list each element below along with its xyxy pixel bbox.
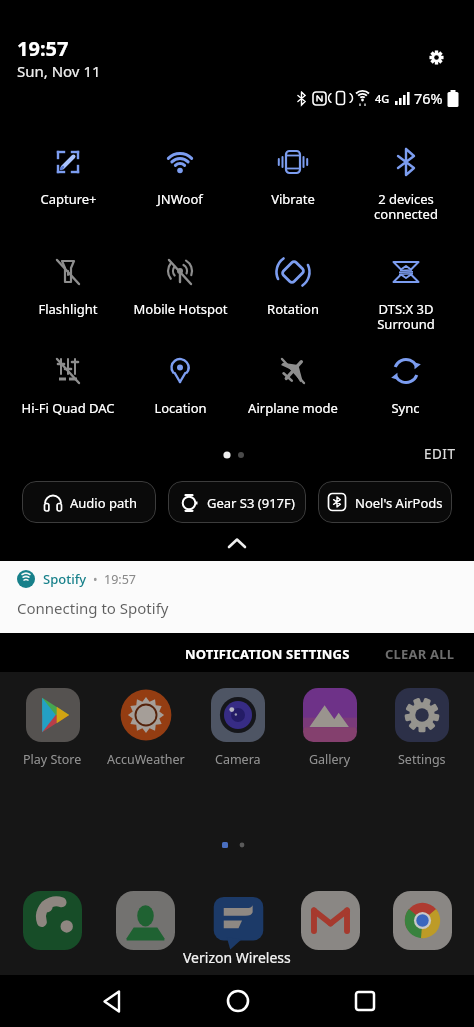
staticText: Audio path: [70, 494, 137, 512]
staticText: 19:57: [17, 35, 69, 62]
button[interactable]: CLEAR ALL: [375, 637, 465, 671]
staticText: Noel's AirPods: [355, 494, 443, 512]
button[interactable]: Airplane mode: [236, 352, 349, 417]
staticText: 76%: [414, 88, 443, 108]
staticText: Vibrate: [271, 190, 315, 208]
button[interactable]: [99, 891, 192, 950]
button[interactable]: [192, 891, 284, 950]
button[interactable]: [212, 975, 264, 1027]
staticText: AccuWeather: [107, 751, 185, 768]
button[interactable]: EDIT: [410, 440, 470, 468]
staticText: 19:57: [104, 571, 136, 588]
staticText: Mobile Hotspot: [133, 300, 228, 318]
staticText: •: [93, 571, 98, 587]
staticText: Verizon Wireless: [183, 948, 291, 967]
button[interactable]: Mobile Hotspot: [124, 253, 236, 318]
button[interactable]: JNWoof: [124, 143, 236, 208]
button[interactable]: Noel's AirPods: [318, 481, 452, 523]
staticText: Play Store: [23, 751, 82, 768]
button[interactable]: Hi-Fi Quad DAC: [12, 352, 124, 417]
button[interactable]: DTS:X 3D Surround: [349, 253, 462, 333]
staticText: Flashlight: [38, 300, 98, 318]
button[interactable]: [376, 891, 468, 950]
staticText: 2 devices connected: [374, 190, 438, 223]
button[interactable]: [339, 975, 391, 1027]
staticText: Spotify: [43, 570, 87, 588]
button[interactable]: NOTIFICATION SETTINGS: [165, 637, 370, 671]
button[interactable]: [284, 891, 376, 950]
staticText: Rotation: [267, 300, 319, 318]
button[interactable]: Spotify: [0, 561, 474, 633]
staticText: CLEAR ALL: [385, 645, 455, 663]
staticText: Sync: [391, 399, 420, 417]
staticText: Capture+: [40, 190, 97, 208]
button[interactable]: [6, 891, 99, 950]
staticText: NOTIFICATION SETTINGS: [185, 645, 350, 663]
staticText: 4G: [375, 91, 390, 106]
button[interactable]: Sync: [349, 352, 462, 417]
staticText: Connecting to Spotify: [17, 598, 169, 618]
staticText: DTS:X 3D Surround: [377, 300, 435, 333]
staticText: Camera: [215, 751, 261, 768]
button[interactable]: Gear S3 (917F): [168, 481, 306, 523]
button[interactable]: Play Store: [6, 688, 99, 768]
staticText: Airplane mode: [248, 399, 338, 417]
button[interactable]: [420, 41, 452, 73]
button[interactable]: Gallery: [284, 688, 376, 768]
button[interactable]: Audio path: [22, 481, 156, 523]
button[interactable]: Rotation: [236, 253, 349, 318]
button[interactable]: Camera: [192, 688, 284, 768]
staticText: Gear S3 (917F): [207, 494, 295, 512]
staticText: JNWoof: [157, 190, 203, 208]
staticText: Settings: [398, 751, 446, 768]
button[interactable]: Location: [124, 352, 236, 417]
button[interactable]: Vibrate: [236, 143, 349, 208]
button[interactable]: Flashlight: [12, 253, 124, 318]
button[interactable]: 2 devices connected: [349, 143, 462, 223]
staticText: Gallery: [309, 751, 351, 768]
staticText: Hi-Fi Quad DAC: [21, 399, 115, 417]
button[interactable]: AccuWeather: [99, 688, 192, 768]
staticText: Location: [154, 399, 207, 417]
staticText: EDIT: [424, 445, 456, 463]
button[interactable]: [86, 975, 138, 1027]
button[interactable]: [217, 530, 257, 556]
staticText: Sun, Nov 11: [17, 61, 101, 81]
button[interactable]: Capture+: [12, 143, 124, 208]
button[interactable]: Settings: [376, 688, 468, 768]
